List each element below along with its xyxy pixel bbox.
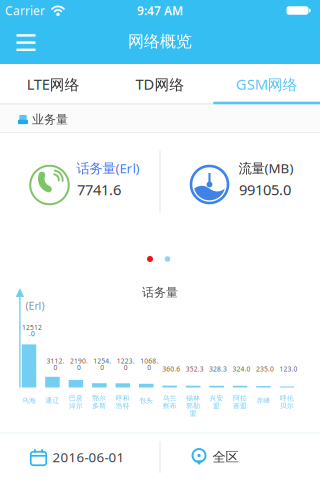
staticText: 0 <box>100 363 104 372</box>
staticText: 呼伦 <box>280 394 294 402</box>
staticText: 324.0 <box>232 365 250 373</box>
staticText: 12512 <box>22 323 42 332</box>
staticText: 赤峰 <box>256 396 270 405</box>
staticText: 0 <box>124 363 128 372</box>
staticText: 包头 <box>139 396 153 405</box>
staticText: LTE网络 <box>27 74 80 94</box>
staticText: 9:47 AM <box>137 2 183 18</box>
button[interactable]: TD网络 <box>107 64 213 104</box>
staticText: 多斯 <box>92 402 106 410</box>
staticText: 1254. <box>93 357 111 365</box>
staticText: 乌海 <box>22 396 36 405</box>
staticText: 7741.6 <box>77 180 121 199</box>
staticText: 网络概览 <box>128 32 192 51</box>
staticText: 123.0 <box>279 365 297 373</box>
button[interactable]: 2016-06-01 <box>0 434 159 480</box>
staticText: 盟 <box>213 402 220 410</box>
staticText: (Erl) <box>25 298 44 313</box>
staticText: 锡林 <box>186 394 200 402</box>
staticText: 0 <box>53 363 57 372</box>
staticText: 阿拉 <box>233 394 247 402</box>
staticText: 善盟 <box>233 402 247 410</box>
staticText: 郭勒 <box>186 402 200 410</box>
staticText: 贝尔 <box>280 402 294 410</box>
staticText: 业务量 <box>32 112 68 127</box>
staticText: 话务量 <box>142 285 178 300</box>
staticText: GSM网络 <box>236 74 298 94</box>
button[interactable]: 全区 <box>160 434 319 480</box>
staticText: 1223. <box>117 357 135 365</box>
staticText: 328.3 <box>209 365 227 373</box>
staticText: 察布 <box>163 402 177 410</box>
staticText: 1068. <box>140 357 158 365</box>
staticText: 360.6 <box>162 365 180 373</box>
staticText: 235.0 <box>256 365 274 373</box>
staticText: 通辽 <box>45 396 59 405</box>
staticText: 乌兰 <box>163 394 177 402</box>
staticText: 呼和 <box>116 394 130 402</box>
staticText: 0 <box>77 363 81 372</box>
staticText: .0 <box>29 329 35 338</box>
staticText: 流量(MB) <box>238 159 293 177</box>
staticText: 352.3 <box>186 365 204 373</box>
staticText: 鄂尔 <box>92 394 106 402</box>
staticText: 99105.0 <box>239 180 291 199</box>
staticText: Carrier <box>5 2 45 18</box>
button[interactable]: Menu <box>6 23 45 60</box>
staticText: TD网络 <box>135 74 184 94</box>
staticText: 话务量(Erl) <box>76 159 139 177</box>
staticText: 兴安 <box>210 394 224 402</box>
staticText: 盟 <box>190 409 197 417</box>
staticText: 浩特 <box>116 402 130 410</box>
staticText: 0 <box>147 363 151 372</box>
staticText: 3112. <box>46 357 64 365</box>
staticText: 巴彦 <box>69 394 83 402</box>
staticText: 2190. <box>70 357 88 365</box>
button[interactable]: LTE网络 <box>0 64 106 104</box>
staticText: 全区 <box>212 449 238 465</box>
staticText: 淖尔 <box>69 402 83 410</box>
button[interactable]: GSM网络 <box>214 64 320 104</box>
staticText: 2016-06-01 <box>52 448 124 466</box>
